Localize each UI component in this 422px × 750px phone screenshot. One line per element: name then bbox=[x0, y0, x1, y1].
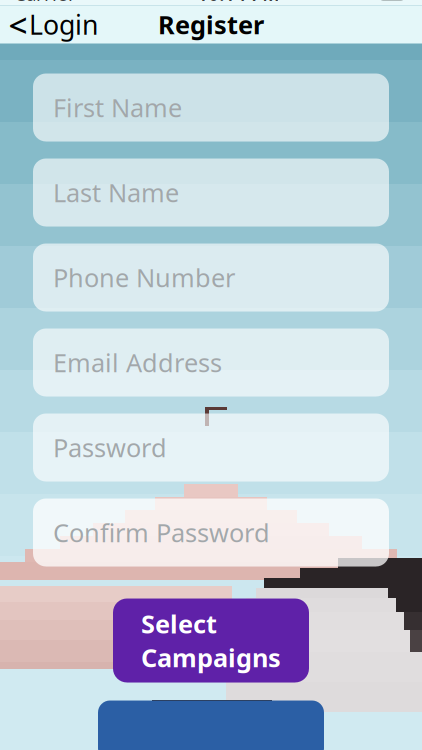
staticText: 10:14 PM bbox=[197, 0, 279, 6]
staticText: Select Campaigns bbox=[141, 607, 281, 674]
button[interactable]: Email Address bbox=[33, 328, 389, 396]
staticText: Phone Number bbox=[53, 261, 235, 294]
staticText: First Name bbox=[53, 91, 182, 124]
staticText: Password bbox=[53, 431, 167, 464]
button[interactable]: Confirm Password bbox=[33, 498, 389, 566]
button[interactable]: Phone Number bbox=[33, 243, 389, 311]
button[interactable]: Last Name bbox=[33, 158, 389, 226]
staticText: Email Address bbox=[53, 346, 222, 379]
staticText: < bbox=[8, 2, 27, 47]
staticText: Carrier bbox=[14, 0, 76, 6]
button[interactable]: Select Campaigns bbox=[113, 598, 309, 682]
staticText: Login bbox=[29, 7, 98, 42]
staticText: Register bbox=[158, 8, 264, 41]
button[interactable]: Register bbox=[98, 700, 324, 750]
button[interactable]: Password bbox=[33, 413, 389, 481]
staticText: Confirm Password bbox=[53, 516, 270, 549]
button[interactable]: First Name bbox=[33, 73, 389, 141]
staticText: Last Name bbox=[53, 176, 179, 209]
button[interactable]: < bbox=[0, 1, 109, 48]
